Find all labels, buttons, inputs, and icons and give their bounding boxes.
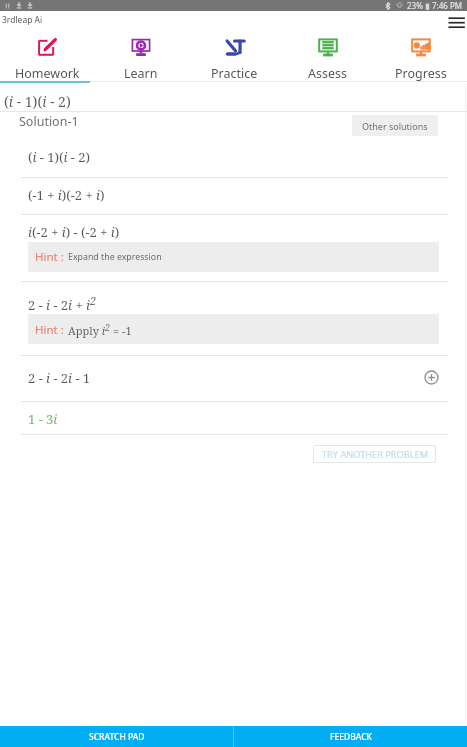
button[interactable]: Add step: [424, 370, 439, 385]
staticText: Solution-1: [19, 113, 79, 130]
button[interactable]: TRY ANOTHER PROBLEM: [313, 445, 436, 463]
staticText: 1 - 3i: [28, 410, 58, 428]
button[interactable]: (i - 1)(i - 2): [0, 144, 467, 170]
staticText: (i - 1)(i - 2): [4, 92, 71, 111]
button[interactable]: (-1 + i)(-2 + i): [0, 182, 467, 208]
button[interactable]: 2 - i - 2i - 1: [0, 365, 467, 391]
button[interactable]: Other solutions: [352, 115, 438, 136]
staticText: 2 - i - 2i - 1: [28, 369, 91, 387]
button[interactable]: 2 - i - 2i + i2: [0, 290, 467, 316]
staticText: Expand the expression: [68, 251, 162, 263]
button[interactable]: Menu: [446, 15, 465, 29]
staticText: 7:46 PM: [432, 0, 463, 11]
staticText: Homework: [15, 65, 80, 81]
button[interactable]: FEEDBACK: [234, 726, 467, 747]
button[interactable]: Homework: [0, 33, 94, 81]
button[interactable]: Progress: [374, 33, 467, 81]
staticText: (-1 + i)(-2 + i): [28, 186, 105, 204]
staticText: 3rdleap Ai: [2, 14, 43, 26]
button[interactable]: Assess: [281, 33, 374, 81]
staticText: Practice: [211, 65, 258, 81]
staticText: Apply i2 = -1: [68, 321, 132, 338]
staticText: TRY ANOTHER PROBLEM: [322, 448, 428, 461]
staticText: Assess: [308, 65, 347, 81]
button[interactable]: Learn: [94, 33, 188, 81]
staticText: (i - 1)(i - 2): [28, 148, 91, 166]
staticText: 23%: [407, 0, 423, 11]
staticText: Hint :: [35, 249, 64, 265]
button[interactable]: i(-2 + i) - (-2 + i): [0, 219, 467, 245]
staticText: Hint :: [35, 322, 64, 338]
staticText: FEEDBACK: [330, 731, 372, 743]
staticText: i(-2 + i) - (-2 + i): [28, 223, 120, 241]
staticText: Learn: [124, 65, 158, 81]
staticText: Other solutions: [362, 120, 428, 132]
staticText: Progress: [395, 65, 447, 81]
button[interactable]: 1 - 3i: [0, 406, 467, 432]
staticText: 2 - i - 2i + i2: [28, 293, 97, 314]
staticText: SCRATCH PAD: [89, 731, 145, 743]
button[interactable]: Practice: [188, 33, 281, 81]
button[interactable]: SCRATCH PAD: [0, 726, 233, 747]
